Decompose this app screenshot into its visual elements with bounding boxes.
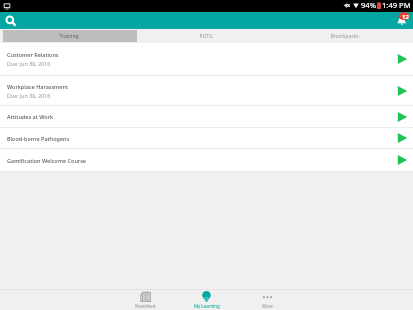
button[interactable]: My Learning xyxy=(176,292,237,310)
staticText: Gamification Welcome Course xyxy=(7,157,86,164)
button[interactable]: Training xyxy=(0,29,137,43)
button[interactable]: Notifications xyxy=(393,12,413,29)
staticText: 94% xyxy=(361,0,376,10)
button[interactable]: Customer Relations xyxy=(0,43,413,76)
button[interactable]: Workplace Harassment xyxy=(0,76,413,106)
button[interactable]: More xyxy=(237,292,298,310)
staticText: POTG xyxy=(199,33,213,40)
button[interactable]: BrainSparks xyxy=(275,29,413,43)
staticText: Newsfeed xyxy=(135,303,156,309)
staticText: Attitudes at Work xyxy=(7,113,54,120)
button[interactable]: Attitudes at Work xyxy=(0,106,413,128)
staticText: BrainSparks xyxy=(330,33,359,40)
staticText: More xyxy=(262,303,273,309)
staticText: Due: Jun 30, 2016 xyxy=(7,60,51,67)
button[interactable]: Blood-borne Pathogens xyxy=(0,128,413,149)
staticText: 1:49 PM xyxy=(382,0,411,10)
staticText: Customer Relations xyxy=(7,51,59,58)
staticText: My Learning xyxy=(194,303,220,309)
button[interactable]: Newsfeed xyxy=(115,292,176,310)
button[interactable]: Gamification Welcome Course xyxy=(0,149,413,172)
staticText: Training xyxy=(59,33,79,40)
button[interactable]: POTG xyxy=(137,29,275,43)
button[interactable]: Search xyxy=(0,12,22,29)
staticText: Blood-borne Pathogens xyxy=(7,135,70,142)
staticText: 12 xyxy=(402,13,409,21)
staticText: Workplace Harassment xyxy=(7,83,69,90)
staticText: Due: Jun 30, 2016 xyxy=(7,92,51,99)
